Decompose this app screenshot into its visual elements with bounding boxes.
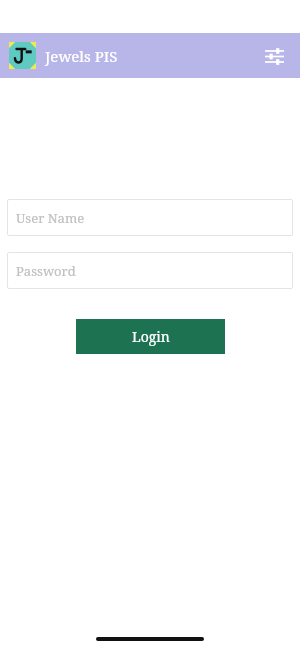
button[interactable]: User Name — [7, 199, 293, 236]
staticText: User Name — [16, 209, 85, 227]
button[interactable]: Jewels PIS logo — [9, 42, 36, 69]
button[interactable]: Settings — [253, 35, 295, 77]
button[interactable]: Password — [7, 252, 293, 289]
staticText: Password — [16, 262, 76, 280]
staticText: Login — [132, 327, 170, 346]
button[interactable]: Login — [76, 319, 225, 354]
staticText: Jewels PIS — [45, 46, 118, 66]
